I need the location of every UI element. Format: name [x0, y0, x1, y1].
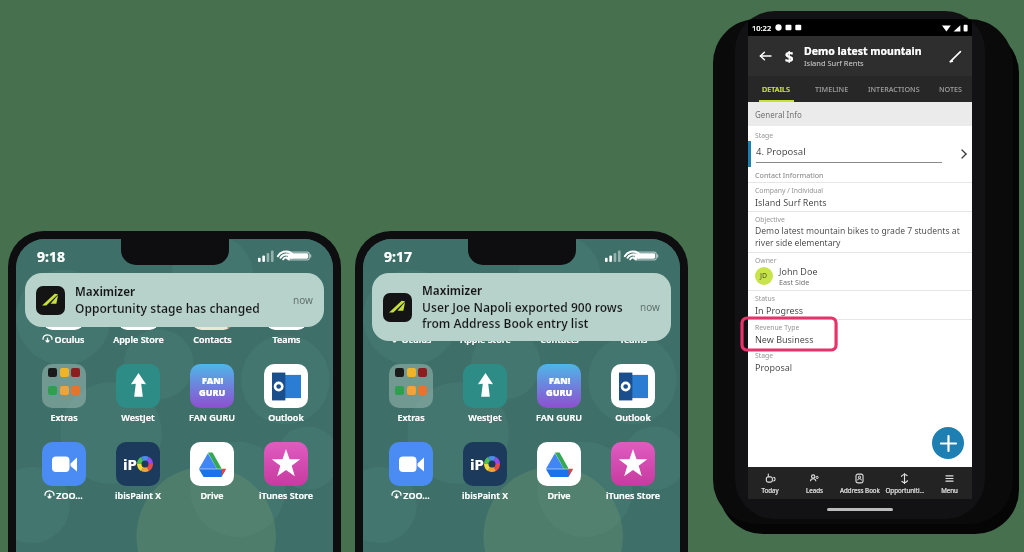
staticText: Apple Store — [113, 333, 164, 345]
staticText: DETAILS — [762, 84, 790, 94]
button[interactable]: Opportuniti... — [882, 467, 927, 499]
staticText: Outlook — [268, 411, 304, 423]
staticText: Oculus — [54, 333, 85, 345]
staticText: Opportuniti... — [885, 486, 925, 494]
staticText: 9:18 — [37, 247, 65, 266]
staticText: 10:22 — [752, 23, 772, 33]
staticText: Menu — [941, 486, 958, 494]
staticText: In Progress — [755, 304, 804, 316]
staticText: User Joe Napoli exported 900 rows — [422, 299, 623, 315]
button[interactable]: FAN! — [522, 364, 596, 423]
button[interactable]: Apple Store — [101, 289, 175, 345]
button[interactable]: Apple Store — [448, 289, 522, 345]
button[interactable]: Company / Individual — [748, 183, 972, 211]
staticText: now — [293, 293, 313, 307]
button[interactable]: Outlook — [249, 364, 323, 423]
button[interactable]: Extras — [373, 364, 448, 423]
staticText: $ — [785, 46, 794, 66]
button[interactable]: Menu — [927, 467, 972, 499]
staticText: Contacts — [193, 333, 232, 345]
staticText: Contacts — [540, 333, 579, 345]
staticText: Island Surf Rents — [804, 58, 864, 68]
button[interactable]: Maximizer — [25, 273, 324, 327]
staticText: ibisPaint X — [462, 489, 508, 501]
button[interactable]: Today — [748, 467, 792, 499]
staticText: FAN! — [549, 374, 571, 386]
button[interactable]: FAN! — [175, 364, 249, 423]
button[interactable]: Edit — [943, 44, 967, 68]
button[interactable]: TIMELINE — [804, 76, 859, 102]
button[interactable]: Teams — [596, 289, 670, 345]
staticText: FAN! — [202, 374, 224, 386]
staticText: FAN GURU — [536, 411, 582, 423]
staticText: iP — [470, 454, 484, 474]
staticText: Apple Store — [460, 333, 511, 345]
staticText: iP — [123, 454, 137, 474]
button[interactable]: WestJet — [101, 364, 175, 423]
button[interactable]: Revenue Type — [748, 320, 972, 348]
button[interactable]: Oculus — [26, 289, 101, 345]
staticText: Proposal — [755, 361, 793, 373]
staticText: Island Surf Rents — [755, 196, 827, 208]
button[interactable]: Stage — [748, 348, 972, 376]
staticText: Demo latest mountain bikes to grade 7 st… — [755, 225, 960, 237]
button[interactable]: INTERACTIONS — [859, 76, 928, 102]
button[interactable]: Contacts — [175, 289, 249, 345]
staticText: Maximizer — [75, 284, 136, 300]
button[interactable]: Back — [753, 44, 777, 68]
button[interactable]: Extras — [26, 364, 101, 423]
staticText: Opportunity stage has changed — [75, 300, 260, 316]
staticText: John Doe — [779, 265, 818, 277]
button[interactable]: Add — [932, 427, 964, 459]
staticText: Oculus — [401, 333, 432, 345]
button[interactable]: Objective — [748, 212, 972, 252]
button[interactable]: DETAILS — [748, 76, 804, 102]
button[interactable]: ZOO... — [373, 442, 448, 501]
button[interactable]: Leads — [792, 467, 837, 499]
button[interactable]: Teams — [249, 289, 323, 345]
button[interactable]: Oculus — [373, 289, 448, 345]
button[interactable]: iP — [101, 442, 175, 501]
staticText: INTERACTIONS — [868, 84, 920, 94]
staticText: now — [640, 300, 660, 314]
staticText: Teams — [272, 333, 301, 345]
staticText: iTunes Store — [606, 489, 660, 501]
staticText: iTunes Store — [259, 489, 313, 501]
staticText: ZOO... — [403, 489, 430, 501]
staticText: Revenue Type — [755, 323, 800, 332]
staticText: ZOO... — [56, 489, 83, 501]
button[interactable]: WestJet — [448, 364, 522, 423]
button[interactable]: iP — [448, 442, 522, 501]
button[interactable]: Contacts — [522, 289, 596, 345]
button[interactable]: Drive — [522, 442, 596, 501]
staticText: Status — [755, 294, 775, 303]
staticText: Extras — [50, 411, 78, 423]
staticText: Demo latest mountain bikes … — [804, 44, 943, 58]
staticText: Leads — [806, 486, 823, 494]
staticText: from Address Book entry list — [422, 315, 589, 331]
staticText: Stage — [755, 131, 774, 140]
button[interactable]: Maximizer — [372, 273, 671, 341]
staticText: WestJet — [121, 411, 155, 423]
staticText: GURU — [199, 386, 226, 398]
button[interactable]: Owner — [748, 253, 972, 290]
button[interactable]: iTunes Store — [596, 442, 670, 501]
staticText: Stage — [755, 351, 774, 360]
button[interactable]: iTunes Store — [249, 442, 323, 501]
button[interactable]: ZOO... — [26, 442, 101, 501]
button[interactable]: NOTES — [928, 76, 972, 102]
button[interactable]: Outlook — [596, 364, 670, 423]
button[interactable]: 4. Proposal — [748, 141, 972, 167]
button[interactable]: Address Book — [837, 467, 882, 499]
staticText: Drive — [547, 489, 571, 501]
staticText: Owner — [755, 256, 777, 265]
staticText: Address Book — [840, 486, 880, 494]
button[interactable]: Status — [748, 291, 972, 319]
staticText: river side elementary — [755, 237, 841, 249]
staticText: NOTES — [939, 84, 962, 94]
staticText: Drive — [200, 489, 224, 501]
staticText: ibisPaint X — [115, 489, 161, 501]
button[interactable]: Drive — [175, 442, 249, 501]
staticText: Objective — [755, 215, 785, 224]
staticText: Outlook — [615, 411, 651, 423]
